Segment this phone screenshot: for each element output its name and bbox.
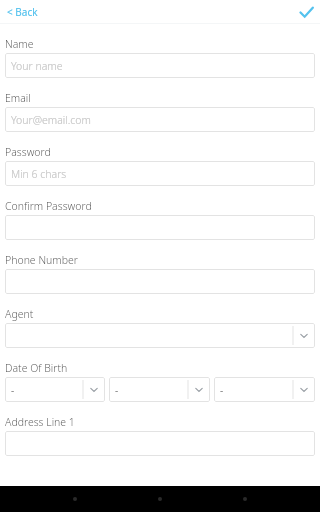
staticText: Email <box>5 91 31 105</box>
button[interactable]: Recents <box>228 486 262 512</box>
button[interactable]: Your@email.com <box>5 107 315 132</box>
staticText: Confirm Password <box>5 199 92 213</box>
staticText: Address Line 1 <box>5 415 75 429</box>
button[interactable] <box>5 215 315 240</box>
staticText: < Back <box>7 5 38 19</box>
staticText: Phone Number <box>5 253 78 267</box>
staticText: - <box>220 383 224 397</box>
button[interactable] <box>5 323 315 348</box>
button[interactable]: - <box>5 377 105 402</box>
button[interactable]: < Back <box>3 2 42 22</box>
button[interactable]: - <box>109 377 210 402</box>
staticText: Date Of Birth <box>5 361 68 375</box>
staticText: Password <box>5 145 51 159</box>
button[interactable]: Your name <box>5 53 315 78</box>
button[interactable] <box>5 431 315 456</box>
staticText: - <box>11 383 15 397</box>
button[interactable]: Home <box>143 486 177 512</box>
staticText: Agent <box>5 307 34 321</box>
button[interactable]: - <box>214 377 315 402</box>
button[interactable] <box>5 269 315 294</box>
button[interactable]: Min 6 chars <box>5 161 315 186</box>
staticText: Your@email.com <box>11 113 91 127</box>
staticText: Name <box>5 37 34 51</box>
staticText: Your name <box>11 59 63 73</box>
button[interactable]: Submit <box>296 2 316 22</box>
staticText: - <box>115 383 119 397</box>
staticText: Min 6 chars <box>11 167 67 181</box>
button[interactable]: Back <box>58 486 92 512</box>
